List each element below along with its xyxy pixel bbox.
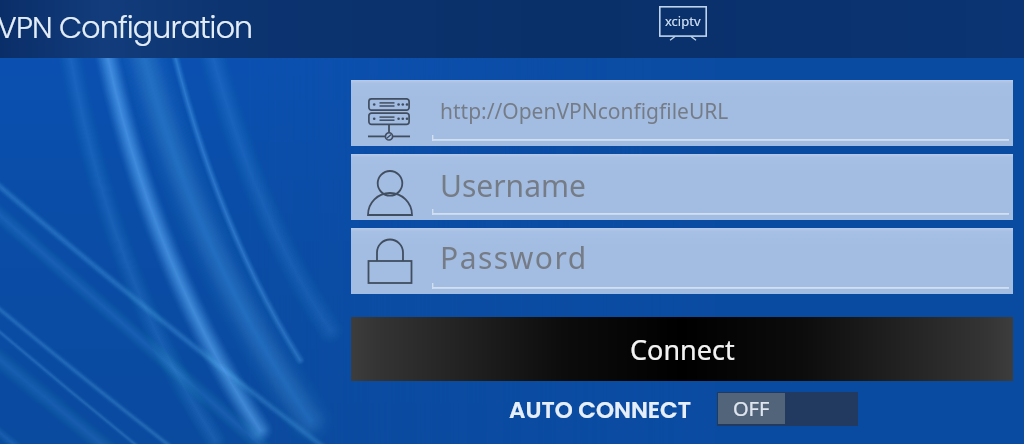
- staticText: OFF: [733, 395, 770, 422]
- button[interactable]: Auto connect off: [717, 392, 858, 426]
- other: Username: [367, 171, 413, 217]
- button[interactable]: xciptv: [659, 6, 707, 42]
- staticText: xciptv: [665, 12, 701, 30]
- staticText: Username: [440, 165, 586, 206]
- button[interactable]: Password: [351, 228, 1013, 294]
- other: Server URL: [368, 98, 410, 140]
- button[interactable]: Username: [351, 154, 1013, 220]
- staticText: Connect: [630, 331, 735, 368]
- staticText: AUTO CONNECT: [509, 394, 691, 426]
- staticText: VPN Configuration: [0, 7, 253, 49]
- staticText: Password: [440, 237, 588, 278]
- other: Password: [368, 239, 412, 285]
- button[interactable]: Connect: [351, 317, 1013, 381]
- button[interactable]: AUTO CONNECT: [509, 394, 691, 426]
- button[interactable]: Server URL: [351, 80, 1013, 146]
- staticText: http://OpenVPNconfigfileURL: [440, 97, 729, 126]
